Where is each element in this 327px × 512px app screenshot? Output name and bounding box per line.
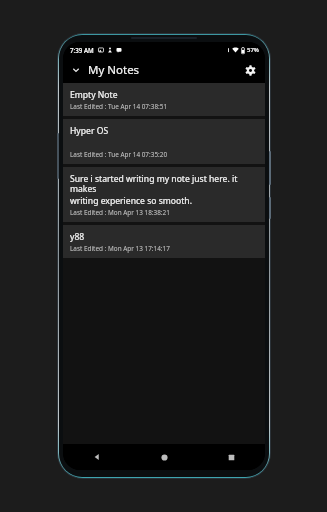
button[interactable]: Recent apps [198, 444, 265, 470]
staticText: My Notes [88, 62, 140, 78]
staticText: 7:39 AM [70, 46, 94, 54]
staticText: Sure i started writing my note just here… [70, 173, 258, 195]
staticText: writing experience so smooth. [70, 195, 192, 207]
button[interactable]: Hyper OS [63, 119, 265, 164]
button[interactable]: y88 [63, 225, 265, 258]
button[interactable]: Settings [241, 61, 259, 79]
staticText: Last Edited : Tue Apr 14 07:35:20 [70, 150, 168, 159]
staticText: y88 [70, 231, 85, 243]
staticText: 57% [247, 46, 259, 54]
staticText: Last Edited : Mon Apr 13 17:14:17 [70, 244, 170, 253]
button[interactable]: Sure i started writing my note just here… [63, 167, 265, 222]
staticText: Hyper OS [70, 125, 109, 137]
button[interactable]: Expand notes menu [68, 62, 84, 78]
button[interactable]: Empty Note [63, 83, 265, 116]
button[interactable]: Back [63, 444, 131, 470]
staticText: Empty Note [70, 89, 118, 101]
staticText: Last Edited : Mon Apr 13 18:38:21 [70, 208, 170, 217]
button[interactable]: Home [131, 444, 198, 470]
staticText: Last Edited : Tue Apr 14 07:38:51 [70, 102, 168, 111]
